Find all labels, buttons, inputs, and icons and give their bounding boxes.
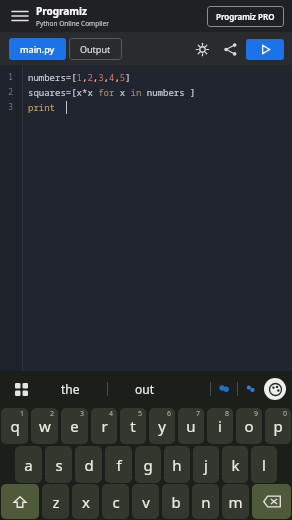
button[interactable]: v: [132, 484, 159, 519]
staticText: t: [130, 416, 136, 436]
button[interactable]: s: [45, 446, 72, 483]
staticText: 3: [80, 409, 85, 419]
button[interactable]: Backspace: [252, 484, 291, 519]
staticText: numbers=[1,2,3,4,5]: [28, 71, 131, 83]
staticText: w: [39, 416, 51, 436]
staticText: d: [84, 455, 94, 475]
button[interactable]: Theme: [190, 37, 214, 61]
button[interactable]: m: [222, 484, 249, 519]
button[interactable]: a: [15, 446, 42, 483]
button[interactable]: i: [207, 408, 233, 444]
staticText: the: [61, 381, 80, 397]
staticText: 8: [225, 409, 230, 419]
staticText: Output: [80, 43, 111, 55]
staticText: g: [143, 455, 153, 475]
button[interactable]: r: [91, 408, 117, 444]
staticText: 6: [167, 409, 172, 419]
staticText: 1: [20, 409, 25, 419]
staticText: 1: [8, 71, 14, 83]
button[interactable]: out: [108, 371, 182, 406]
button[interactable]: b: [162, 484, 189, 519]
staticText: k: [231, 455, 240, 475]
button[interactable]: q: [1, 408, 28, 444]
button[interactable]: y: [149, 408, 175, 444]
staticText: n: [201, 492, 211, 512]
staticText: o: [244, 416, 254, 436]
button[interactable]: j: [193, 446, 219, 483]
staticText: i: [218, 416, 222, 436]
button[interactable]: Menu: [8, 4, 32, 28]
staticText: f: [116, 455, 122, 475]
button[interactable]: Programiz PRO: [207, 6, 284, 27]
button[interactable]: f: [105, 446, 132, 483]
staticText: main.py: [20, 43, 55, 55]
button[interactable]: Shift: [1, 484, 39, 519]
staticText: m: [228, 492, 243, 512]
button[interactable]: h: [164, 446, 190, 483]
button[interactable]: t: [120, 408, 146, 444]
staticText: Python Online Compiler: [36, 19, 109, 28]
staticText: x: [82, 492, 90, 512]
staticText: v: [142, 492, 150, 512]
button[interactable]: Output: [69, 38, 122, 60]
staticText: 0: [283, 409, 288, 419]
staticText: Programiz: [36, 4, 87, 18]
button[interactable]: k: [222, 446, 248, 483]
button[interactable]: x: [72, 484, 99, 519]
staticText: 9: [254, 409, 259, 419]
button[interactable]: o: [236, 408, 262, 444]
button[interactable]: w: [31, 408, 58, 444]
staticText: e: [70, 416, 79, 436]
staticText: p: [273, 416, 283, 436]
button[interactable]: Stickers: [238, 376, 264, 402]
staticText: l: [262, 455, 266, 475]
button[interactable]: p: [265, 408, 291, 444]
button[interactable]: Share: [218, 37, 242, 61]
button[interactable]: c: [102, 484, 129, 519]
button[interactable]: main.py: [9, 38, 66, 60]
staticText: j: [204, 455, 208, 475]
button[interactable]: z: [42, 484, 69, 519]
staticText: squares=[x*x for x in numbers ]: [28, 86, 196, 98]
staticText: 5: [138, 409, 143, 419]
button[interactable]: u: [178, 408, 204, 444]
button[interactable]: d: [75, 446, 102, 483]
staticText: c: [112, 492, 120, 512]
staticText: 2: [8, 86, 14, 98]
staticText: 3: [8, 101, 14, 113]
staticText: out: [135, 381, 155, 397]
staticText: z: [52, 492, 60, 512]
staticText: 7: [196, 409, 201, 419]
button[interactable]: n: [192, 484, 219, 519]
staticText: Programiz PRO: [216, 11, 275, 22]
staticText: r: [101, 416, 108, 436]
staticText: a: [24, 455, 33, 475]
staticText: s: [55, 455, 63, 475]
button[interactable]: the: [34, 371, 107, 406]
button[interactable]: Run: [246, 39, 284, 60]
button[interactable]: e: [61, 408, 88, 444]
button[interactable]: Voice typing: [211, 376, 237, 402]
button[interactable]: Theme palette: [264, 378, 286, 400]
staticText: print: [28, 101, 61, 113]
staticText: 4: [109, 409, 114, 419]
staticText: q: [10, 416, 20, 436]
staticText: 2: [50, 409, 55, 419]
staticText: b: [171, 492, 181, 512]
button[interactable]: l: [251, 446, 277, 483]
button[interactable]: g: [135, 446, 161, 483]
button[interactable]: Keyboard options: [10, 378, 32, 400]
staticText: y: [158, 416, 166, 436]
staticText: u: [186, 416, 196, 436]
staticText: h: [172, 455, 182, 475]
